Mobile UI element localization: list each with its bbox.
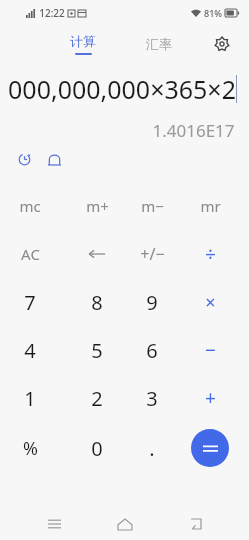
button[interactable]: Home [108, 508, 142, 540]
button[interactable]: 0 [74, 422, 120, 474]
staticText: . [149, 435, 155, 462]
button[interactable]: ÷ [187, 230, 233, 278]
staticText: 81% [204, 7, 222, 19]
staticText: × [205, 290, 216, 315]
staticText: AC [21, 244, 40, 264]
staticText: 12:22 [39, 6, 65, 20]
button[interactable]: 7 [7, 278, 53, 326]
staticText: m− [141, 196, 164, 216]
staticText: 1 [24, 385, 36, 412]
button[interactable]: 计算 [62, 30, 104, 58]
staticText: + [205, 385, 216, 411]
button[interactable]: Backspace [74, 230, 120, 278]
button[interactable]: mc [7, 182, 53, 230]
button[interactable]: Equals [187, 422, 233, 474]
staticText: 0 [91, 435, 103, 462]
button[interactable]: . [129, 422, 175, 474]
staticText: 000,000,000×365×2 [8, 72, 236, 106]
button[interactable]: m+ [74, 182, 120, 230]
button[interactable]: 3 [129, 374, 175, 422]
button[interactable]: 8 [74, 278, 120, 326]
staticText: 6 [146, 337, 158, 364]
button[interactable]: 9 [129, 278, 175, 326]
staticText: 5 [91, 337, 103, 364]
staticText: 9 [146, 289, 158, 316]
staticText: − [205, 337, 216, 363]
button[interactable]: × [187, 278, 233, 326]
button[interactable]: Back [178, 508, 212, 540]
staticText: 计算 [70, 33, 96, 49]
staticText: 3 [146, 385, 158, 412]
button[interactable]: 汇率 [138, 33, 180, 55]
staticText: % [23, 436, 38, 461]
button[interactable]: History [11, 146, 37, 172]
staticText: 8 [91, 289, 103, 316]
staticText: 1.4016E17 [152, 119, 235, 142]
staticText: ÷ [205, 241, 216, 267]
button[interactable]: m− [129, 182, 175, 230]
button[interactable]: 4 [7, 326, 53, 374]
button[interactable]: 1 [7, 374, 53, 422]
button[interactable]: % [7, 422, 53, 474]
staticText: mr [200, 196, 221, 216]
button[interactable]: + [187, 374, 233, 422]
button[interactable]: Recents [37, 508, 71, 540]
button[interactable]: 6 [129, 326, 175, 374]
button[interactable]: AC [7, 230, 53, 278]
button[interactable]: − [187, 326, 233, 374]
staticText: +/− [140, 243, 165, 265]
button[interactable]: Functions [41, 146, 67, 172]
button[interactable]: +/− [129, 230, 175, 278]
staticText: mc [19, 196, 41, 216]
staticText: 汇率 [146, 36, 172, 52]
staticText: 2 [91, 385, 103, 412]
button[interactable]: 5 [74, 326, 120, 374]
button[interactable]: mr [187, 182, 233, 230]
staticText: 7 [24, 289, 36, 316]
staticText: m+ [86, 196, 109, 216]
staticText: 4 [24, 337, 36, 364]
button[interactable]: 2 [74, 374, 120, 422]
button[interactable]: Settings [207, 29, 237, 59]
